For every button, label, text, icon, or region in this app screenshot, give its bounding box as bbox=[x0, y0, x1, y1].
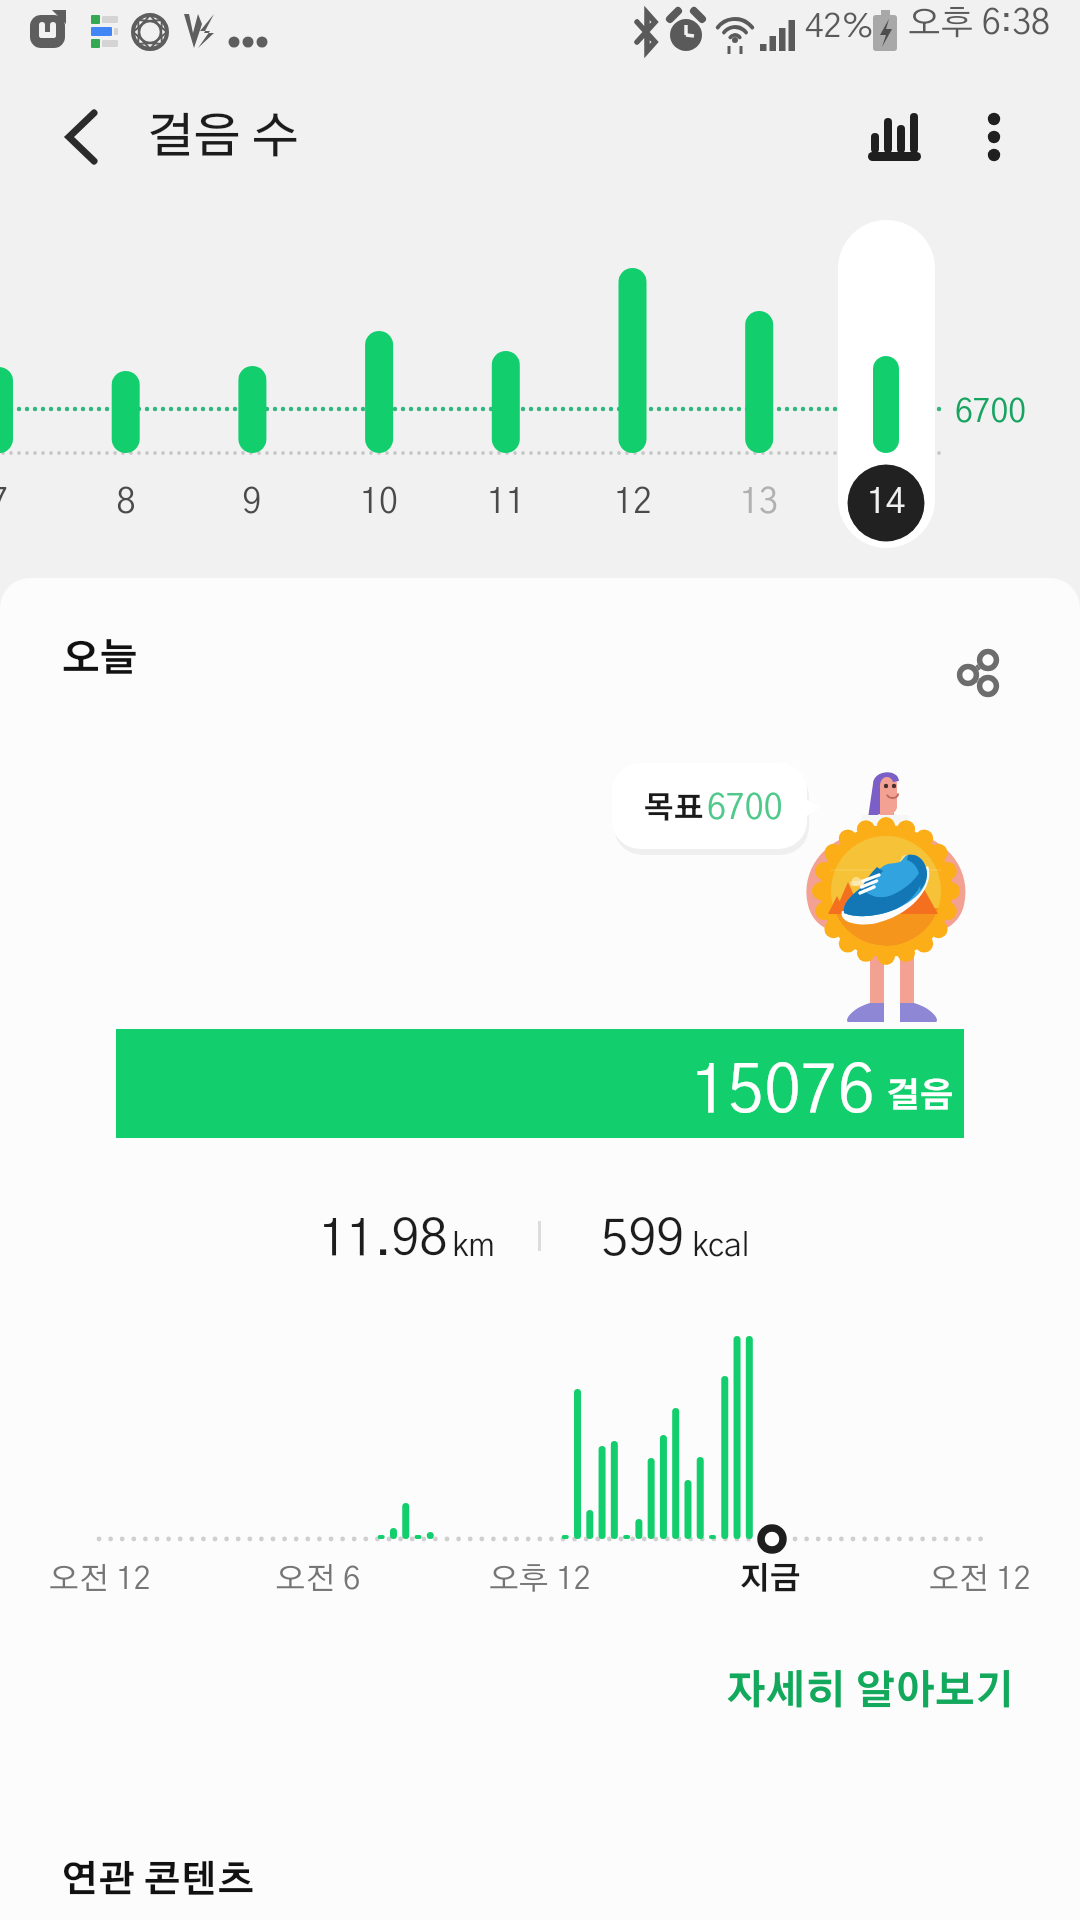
staticText: 오후 12 bbox=[420, 1564, 660, 1595]
staticText: 10 bbox=[259, 486, 499, 520]
staticText: 오후 6:38 bbox=[908, 7, 1051, 41]
staticText: 오전 6 bbox=[198, 1564, 438, 1595]
button[interactable] bbox=[838, 220, 935, 548]
button[interactable]: 15076 bbox=[116, 1029, 964, 1138]
staticText: km bbox=[452, 1230, 495, 1262]
staticText: 13 bbox=[639, 486, 879, 520]
staticText: 9 bbox=[132, 486, 372, 520]
staticText: 목표 bbox=[644, 794, 704, 824]
staticText: 12 bbox=[513, 486, 753, 520]
staticText: 오전 12 bbox=[0, 1564, 220, 1595]
staticText: 6700 bbox=[955, 396, 1027, 428]
button[interactable]: 자세히 알아보기 bbox=[706, 1652, 1035, 1732]
button[interactable]: Back bbox=[41, 95, 121, 175]
staticText: 걸음 bbox=[886, 1080, 954, 1114]
staticText: 지금 bbox=[650, 1564, 890, 1595]
staticText: 599 bbox=[601, 1215, 685, 1265]
staticText: 11.98 bbox=[319, 1215, 448, 1265]
staticText: 8 bbox=[6, 486, 246, 520]
button[interactable]: More options bbox=[954, 95, 1034, 175]
staticText: 7 bbox=[0, 486, 119, 520]
staticText: 연관 콘텐츠 bbox=[61, 1862, 255, 1899]
button[interactable]: Share bbox=[939, 635, 1019, 715]
staticText: 걸음 수 bbox=[147, 114, 299, 162]
staticText: 자세히 알아보기 bbox=[726, 1672, 1015, 1712]
staticText: 14 bbox=[766, 486, 1006, 520]
staticText: 오전 12 bbox=[860, 1564, 1080, 1595]
staticText: 11 bbox=[386, 486, 626, 520]
staticText: 6700 bbox=[707, 792, 783, 826]
staticText: 15076 bbox=[691, 1059, 875, 1125]
button[interactable]: Chart bbox=[853, 95, 933, 175]
staticText: 오늘 bbox=[62, 641, 138, 679]
staticText: 42% bbox=[805, 11, 874, 44]
staticText: kcal bbox=[692, 1230, 750, 1262]
